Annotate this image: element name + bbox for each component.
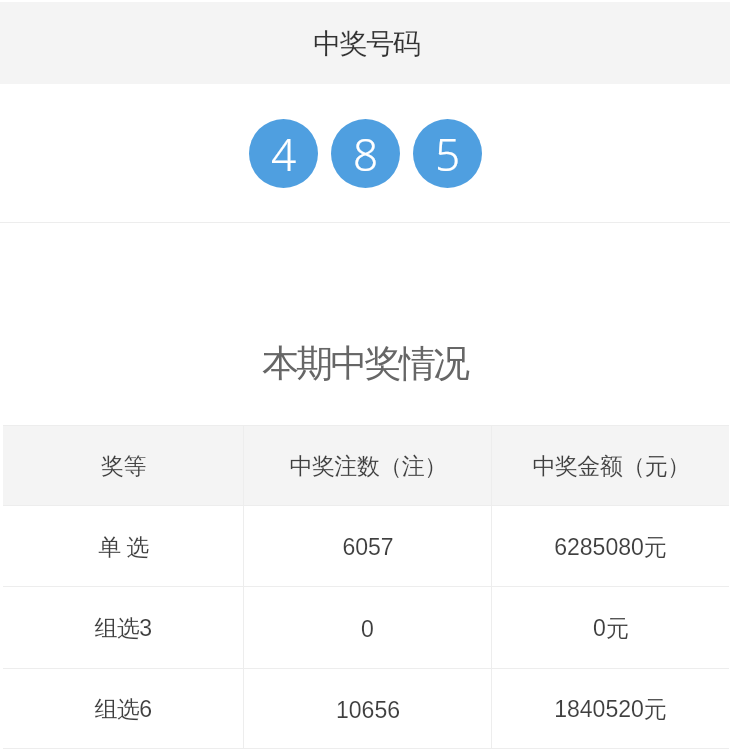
button[interactable]: Winning number 8 [331, 119, 400, 188]
button[interactable]: 6285080元 [492, 506, 729, 586]
staticText: 组选3 [94, 614, 152, 643]
staticText: 奖等 [101, 452, 146, 481]
button[interactable]: Winning number 5 [413, 119, 482, 188]
staticText: 组选6 [94, 695, 152, 724]
staticText: 中奖金额（元） [532, 452, 690, 481]
staticText: 6057 [342, 534, 394, 560]
staticText: 单 选 [98, 533, 149, 562]
staticText: 中奖注数（注） [289, 452, 447, 481]
button[interactable]: 组选3 [3, 587, 243, 668]
button[interactable]: 1840520元 [492, 669, 729, 748]
button[interactable]: 奖等 [3, 426, 243, 505]
staticText: 本期中奖情况 [262, 340, 468, 387]
button[interactable]: 单 选 [3, 506, 243, 586]
staticText: 5 [435, 124, 461, 184]
staticText: 中奖号码 [313, 26, 420, 61]
staticText: 4 [271, 124, 297, 184]
button[interactable]: 组选6 [3, 669, 243, 748]
button[interactable]: 0元 [492, 587, 729, 668]
button[interactable]: 中奖金额（元） [492, 426, 729, 505]
staticText: 6285080元 [554, 533, 667, 562]
staticText: 1840520元 [554, 695, 667, 724]
button[interactable]: 6057 [244, 506, 491, 586]
staticText: 0元 [593, 614, 629, 643]
staticText: 0 [361, 616, 374, 642]
button[interactable]: 中奖注数（注） [244, 426, 491, 505]
staticText: 10656 [336, 697, 400, 723]
button[interactable]: Winning number 4 [249, 119, 318, 188]
button[interactable]: 10656 [244, 669, 491, 748]
staticText: 8 [353, 124, 379, 184]
button[interactable]: 0 [244, 587, 491, 668]
button[interactable]: 中奖号码 [0, 2, 730, 84]
